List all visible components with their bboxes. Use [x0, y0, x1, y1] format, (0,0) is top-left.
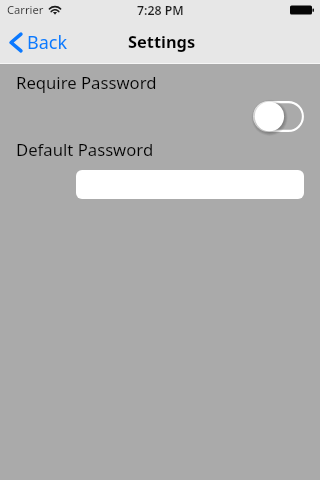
staticText: Default Password: [16, 138, 154, 161]
staticText: 7:28 PM: [137, 2, 184, 19]
staticText: Carrier: [7, 2, 44, 17]
staticText: Settings: [128, 30, 196, 52]
button[interactable]: Back: [9, 20, 68, 64]
staticText: Require Password: [16, 71, 157, 94]
staticText: Back: [27, 30, 68, 55]
button[interactable]: Default Password field: [76, 170, 304, 199]
button[interactable]: Require Password toggle: [253, 101, 304, 132]
